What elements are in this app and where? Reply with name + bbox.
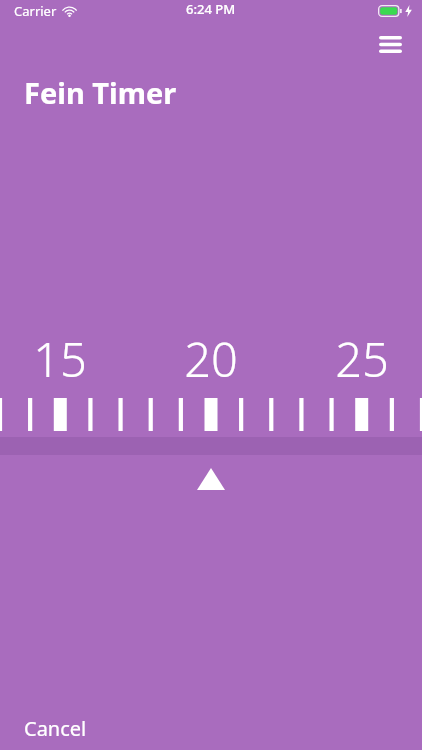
staticText: Carrier [14, 2, 57, 20]
staticText: 15 [33, 327, 87, 391]
staticText: Fein Timer [24, 73, 177, 112]
staticText: Cancel [24, 715, 87, 742]
staticText: 6:24 PM [186, 0, 236, 18]
button[interactable]: Cancel [0, 706, 422, 750]
staticText: 20 [184, 327, 238, 391]
staticText: 25 [335, 327, 389, 391]
button[interactable]: Menu [372, 26, 408, 62]
